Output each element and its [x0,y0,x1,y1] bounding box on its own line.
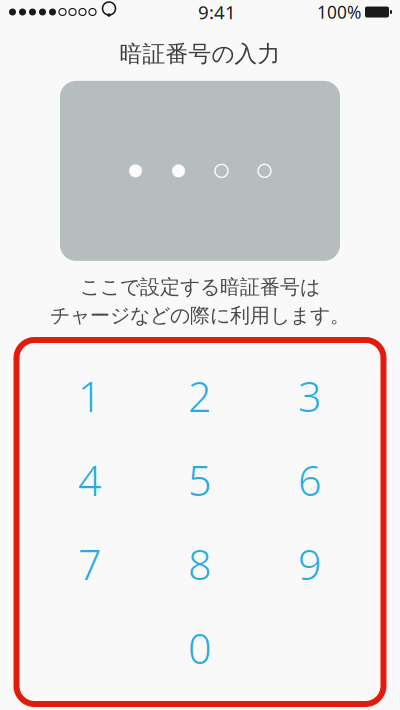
staticText: 1 [78,368,102,423]
staticText: 100% [317,0,361,23]
button[interactable]: 3 [255,354,365,438]
staticText: 4 [78,452,102,507]
staticText: 2 [188,368,212,423]
button[interactable]: 5 [145,438,255,522]
button[interactable]: 6 [255,438,365,522]
button[interactable]: 8 [145,522,255,606]
staticText: チャージなどの際に利用します。 [50,303,350,328]
button[interactable]: 1 [35,354,145,438]
button[interactable]: 4 [35,438,145,522]
staticText: 8 [188,536,212,591]
button[interactable]: 0 [145,606,255,690]
staticText: 7 [78,536,102,591]
staticText: 9:41 [198,0,236,24]
staticText: ここで設定する暗証番号は [80,275,320,299]
staticText: 0 [188,620,212,675]
staticText: 5 [188,452,212,507]
staticText: 3 [298,368,322,423]
staticText: 9 [298,536,322,591]
button[interactable]: 2 [145,354,255,438]
staticText: 6 [298,452,322,507]
staticText: 暗証番号の入力 [119,40,280,68]
button[interactable]: 9 [255,522,365,606]
button[interactable]: 7 [35,522,145,606]
